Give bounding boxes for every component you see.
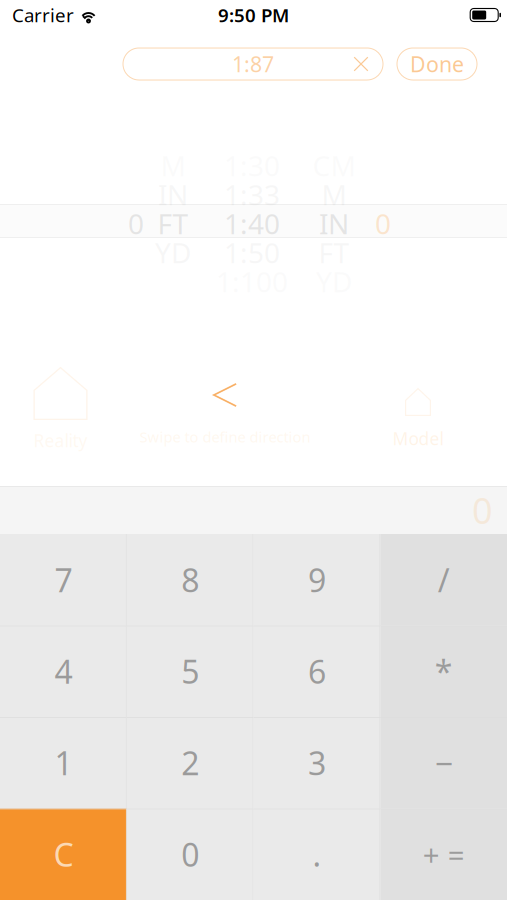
staticText: 1:87 [232, 50, 274, 78]
staticText: YD [155, 234, 191, 271]
staticText: 0 [181, 833, 199, 875]
staticText: 6 [308, 650, 326, 692]
staticText: Model [392, 427, 443, 450]
button[interactable]: / [380, 534, 507, 625]
staticText: FT [318, 234, 349, 271]
button[interactable]: Done [397, 48, 477, 80]
staticText: 2 [181, 741, 199, 784]
button[interactable]: 6 [253, 625, 380, 717]
staticText: 0 [472, 486, 493, 534]
staticText: 7 [54, 558, 72, 601]
button[interactable]: 1 [0, 717, 127, 808]
staticText: FT [157, 205, 188, 242]
staticText: 8 [181, 558, 199, 601]
staticText: 1 [54, 741, 72, 784]
staticText: 5 [181, 650, 199, 692]
staticText: − [435, 741, 453, 784]
button[interactable]: 7 [0, 534, 127, 625]
staticText: 0 [375, 205, 391, 242]
staticText: 9:50 PM [218, 3, 289, 27]
staticText: Done [410, 50, 464, 78]
button[interactable]: + = [380, 808, 507, 900]
staticText: IN [158, 176, 188, 213]
staticText: IN [319, 205, 349, 242]
staticText: * [435, 650, 453, 692]
button[interactable]: 4 [0, 625, 127, 717]
staticText: + = [423, 835, 465, 874]
staticText: 3 [308, 741, 326, 784]
staticText: Carrier [12, 3, 74, 27]
staticText: 9 [308, 558, 326, 601]
staticText: 4 [54, 650, 72, 692]
staticText: / [438, 558, 450, 601]
staticText: C [53, 833, 73, 875]
staticText: 1:33 [224, 176, 280, 213]
staticText: M [321, 176, 346, 213]
button[interactable]: 3 [253, 717, 380, 808]
staticText: 1:40 [224, 205, 280, 242]
button[interactable]: 0 [127, 808, 254, 900]
button[interactable]: C [0, 808, 127, 900]
button[interactable]: 5 [127, 625, 254, 717]
button[interactable]: − [380, 717, 507, 808]
staticText: Swipe to define direction [139, 427, 310, 446]
button[interactable]: 2 [127, 717, 254, 808]
staticText: 0 [128, 205, 144, 242]
button[interactable]: 8 [127, 534, 254, 625]
button[interactable]: 9 [253, 534, 380, 625]
staticText: . [312, 833, 321, 875]
staticText: 1:50 [224, 234, 280, 271]
button[interactable]: Reality [0, 367, 121, 457]
button[interactable]: * [380, 625, 507, 717]
staticText: Reality [33, 429, 87, 452]
button[interactable]: Clear text [341, 48, 383, 80]
